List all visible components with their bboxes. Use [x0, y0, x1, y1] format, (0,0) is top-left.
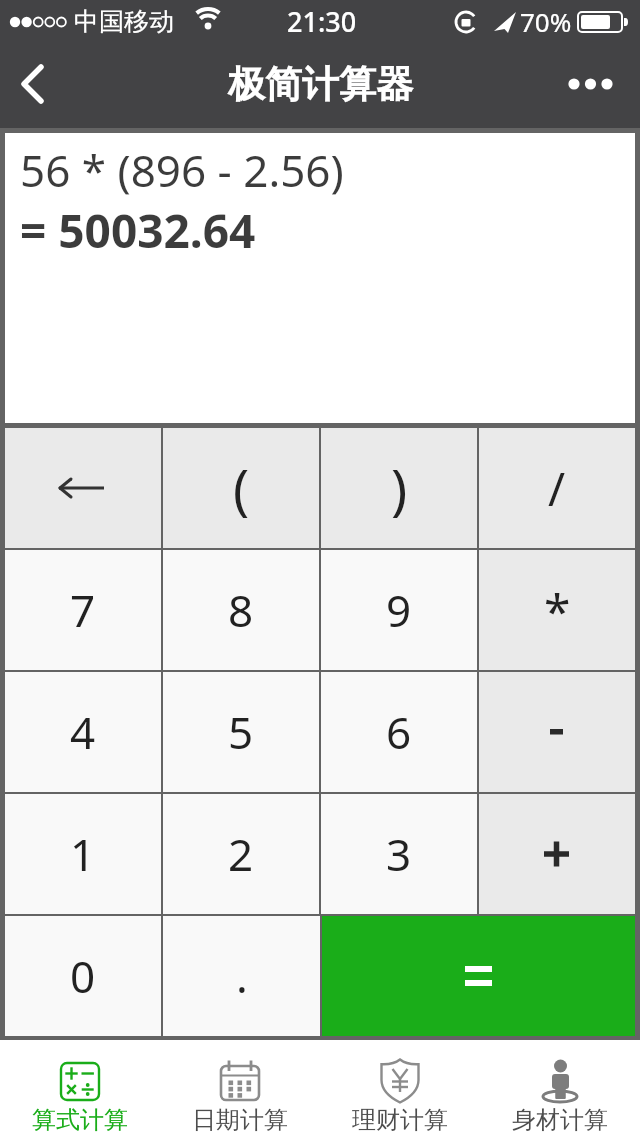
button[interactable] — [322, 916, 635, 1036]
button[interactable] — [479, 794, 635, 914]
staticText: ( — [233, 451, 250, 525]
staticText: / — [548, 457, 566, 520]
button[interactable]: 9 — [321, 550, 477, 670]
button[interactable]: 算式计算 — [0, 1040, 160, 1136]
button[interactable] — [5, 428, 161, 548]
staticText: 日期计算 — [192, 1105, 288, 1135]
button[interactable]: ) — [321, 428, 477, 548]
staticText: 8 — [228, 580, 254, 640]
staticText: 9 — [386, 580, 412, 640]
staticText: 极简计算器 — [228, 61, 413, 108]
button[interactable]: / — [479, 428, 635, 548]
staticText: 7 — [70, 580, 96, 640]
button[interactable]: 8 — [163, 550, 319, 670]
staticText: = 50032.64 — [20, 199, 256, 262]
staticText: . — [236, 946, 248, 1006]
button[interactable] — [560, 44, 640, 128]
button[interactable]: 2 — [163, 794, 319, 914]
button[interactable]: 3 — [321, 794, 477, 914]
staticText: 2 — [228, 824, 254, 884]
button[interactable]: 身材计算 — [480, 1040, 640, 1136]
staticText: ) — [391, 451, 408, 525]
button[interactable]: 0 — [5, 916, 161, 1036]
staticText: 0 — [70, 946, 96, 1006]
button[interactable]: . — [163, 916, 320, 1036]
staticText: 1 — [70, 824, 96, 884]
staticText: 中国移动 — [74, 6, 174, 37]
button[interactable] — [479, 672, 635, 792]
button[interactable]: 4 — [5, 672, 161, 792]
button[interactable]: 5 — [163, 672, 319, 792]
staticText: 6 — [386, 702, 412, 762]
button[interactable]: 6 — [321, 672, 477, 792]
staticText: 56 * (896 - 2.56) — [20, 140, 344, 200]
button[interactable]: ( — [163, 428, 319, 548]
button[interactable]: 理财计算 — [320, 1040, 480, 1136]
staticText: 21:30 — [287, 3, 357, 40]
staticText: * — [544, 578, 571, 643]
staticText: 70% — [520, 4, 572, 39]
staticText: 算式计算 — [32, 1105, 128, 1135]
button[interactable]: 日期计算 — [160, 1040, 320, 1136]
staticText: 4 — [70, 702, 96, 762]
staticText: 身材计算 — [512, 1105, 608, 1135]
button[interactable]: 1 — [5, 794, 161, 914]
button[interactable]: * — [479, 550, 635, 670]
staticText: 理财计算 — [352, 1105, 448, 1135]
button[interactable] — [0, 44, 70, 128]
staticText: 5 — [228, 702, 254, 762]
staticText: 3 — [386, 824, 412, 884]
button[interactable]: 7 — [5, 550, 161, 670]
